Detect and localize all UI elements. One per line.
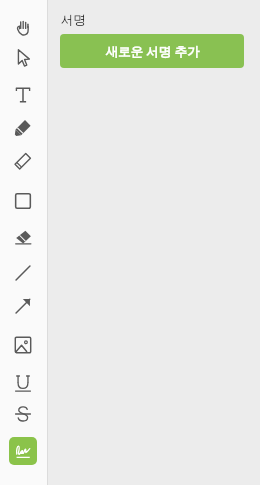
button[interactable]: Signature	[9, 437, 37, 465]
staticText: 새로운 서명 추가	[105, 43, 200, 60]
button[interactable]: Line	[9, 259, 37, 287]
staticText: 서명	[61, 12, 86, 28]
button[interactable]: Text	[9, 81, 37, 109]
button[interactable]: Arrow	[9, 292, 37, 320]
button[interactable]: 새로운 서명 추가	[60, 34, 244, 68]
button[interactable]: Pan	[9, 13, 37, 41]
button[interactable]: Rectangle	[9, 187, 37, 215]
button[interactable]: Highlighter	[9, 114, 37, 142]
button[interactable]: Eraser	[9, 224, 37, 252]
button[interactable]: Pencil	[9, 147, 37, 175]
button[interactable]: Image	[9, 331, 37, 359]
button[interactable]: Underline	[9, 369, 37, 397]
button[interactable]: Strikethrough	[9, 400, 37, 428]
button[interactable]: Select	[9, 44, 37, 72]
